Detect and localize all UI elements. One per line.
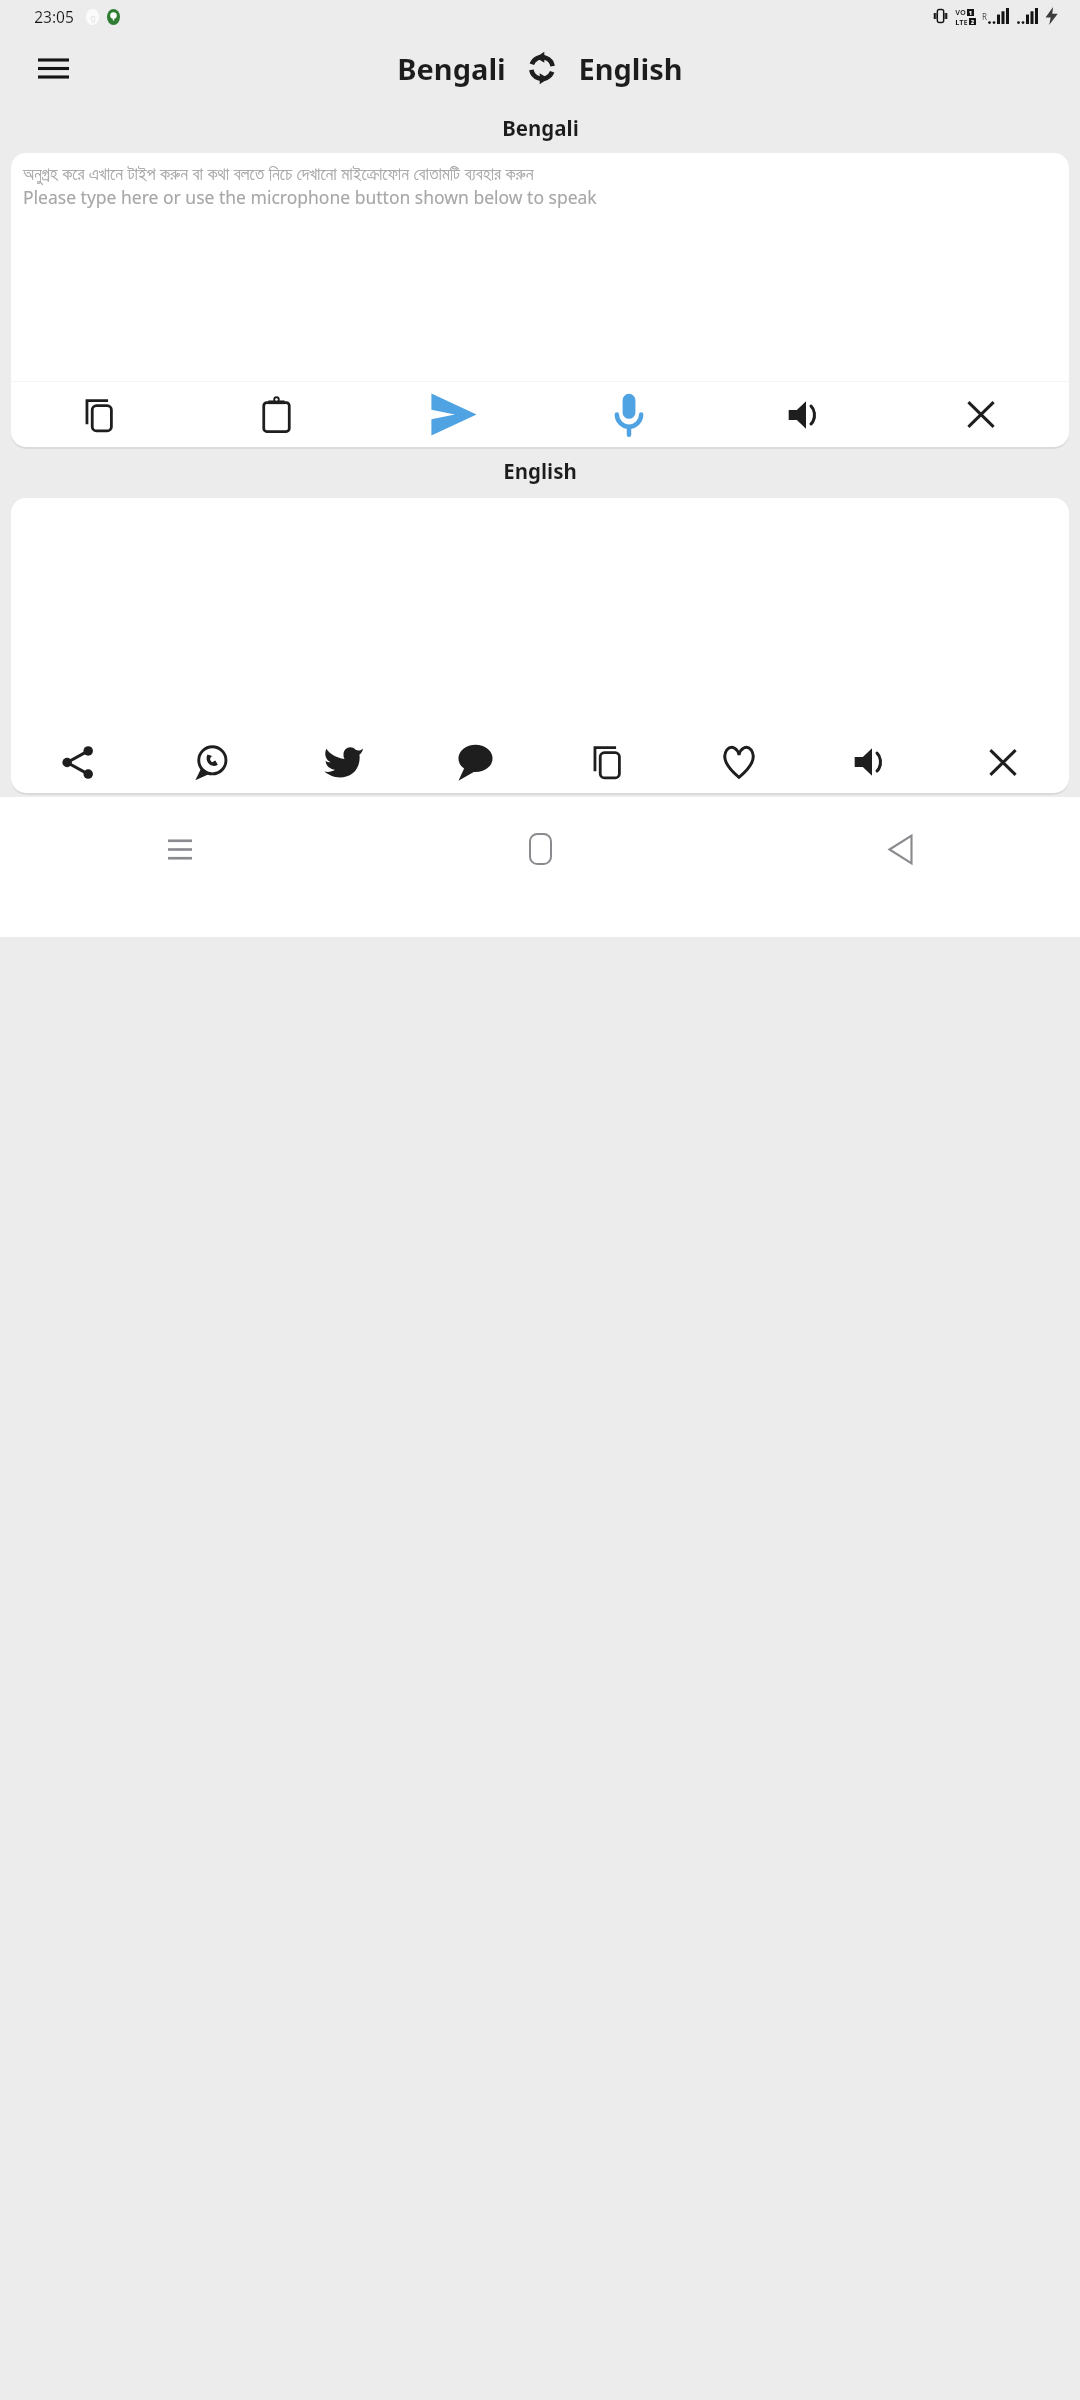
button[interactable]: Copy (541, 731, 673, 793)
button[interactable]: WhatsApp (144, 731, 277, 793)
staticText: English (578, 49, 683, 88)
staticText: অনুগ্রহ করে এখানে টাইপ করুন বা কথা বলতে … (23, 161, 534, 185)
staticText: LTE (955, 17, 968, 25)
button[interactable]: English (578, 49, 683, 88)
button[interactable]: Swap languages (521, 47, 563, 89)
button[interactable]: Recent apps (0, 817, 360, 881)
button[interactable]: Favourite (673, 731, 805, 793)
staticText: VO (955, 7, 966, 17)
button[interactable]: SMS (409, 731, 541, 793)
button[interactable]: Translate (365, 382, 541, 447)
button[interactable]: Listen (717, 382, 893, 447)
staticText: Please type here or use the microphone b… (23, 185, 597, 209)
button[interactable]: Clear (893, 382, 1069, 447)
button[interactable]: Twitter (277, 731, 409, 793)
staticText: 2 (971, 18, 974, 25)
staticText: 1 (969, 9, 972, 16)
button[interactable]: অনুগ্রহ করে এখানে টাইপ করুন বা কথা বলতে … (11, 153, 1069, 381)
button[interactable]: Menu (26, 41, 80, 95)
button[interactable]: Share (11, 731, 144, 793)
button[interactable]: Listen (805, 731, 937, 793)
button[interactable]: Home (360, 817, 720, 881)
button[interactable]: Clear (937, 731, 1069, 793)
button[interactable]: Speak (541, 382, 717, 447)
staticText: 23:05 (34, 6, 74, 27)
staticText: R (982, 11, 987, 22)
staticText: g (90, 11, 96, 23)
button[interactable]: Back (720, 817, 1080, 881)
button[interactable]: Bengali (397, 49, 506, 88)
staticText: English (503, 457, 577, 485)
staticText: Bengali (502, 114, 579, 142)
button[interactable]: Copy (11, 382, 188, 447)
button[interactable]: Paste (188, 382, 365, 447)
staticText: Bengali (397, 49, 506, 88)
